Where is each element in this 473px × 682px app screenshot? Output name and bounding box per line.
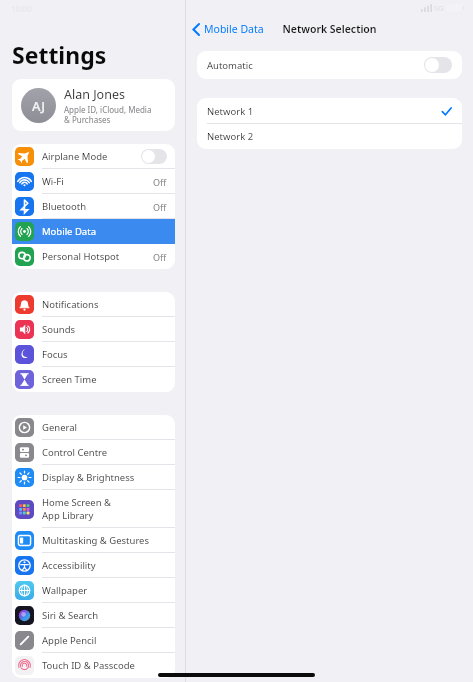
- staticText: Display & Brightness: [42, 471, 167, 484]
- button[interactable]: Touch ID & Passcode: [12, 653, 175, 678]
- staticText: Bluetooth: [42, 200, 153, 213]
- button[interactable]: Bluetooth: [12, 194, 175, 219]
- button[interactable]: Wi-Fi: [12, 169, 175, 194]
- staticText: Off: [153, 176, 167, 188]
- staticText: Sounds: [42, 323, 167, 336]
- button[interactable]: Focus: [12, 342, 175, 367]
- staticText: Network Selection: [186, 22, 473, 36]
- button[interactable]: Wallpaper: [12, 578, 175, 603]
- staticText: Apple Pencil: [42, 634, 167, 647]
- staticText: AJ: [32, 97, 45, 115]
- staticText: General: [42, 421, 167, 434]
- button[interactable]: Toggle: [424, 57, 452, 73]
- staticText: Apple ID, iCloud, Media & Purchases: [64, 104, 152, 125]
- staticText: App Library: [42, 509, 94, 522]
- button[interactable]: Sounds: [12, 317, 175, 342]
- staticText: Alan Jones: [64, 86, 125, 103]
- staticText: Mobile Data: [42, 225, 167, 238]
- button[interactable]: Notifications: [12, 292, 175, 317]
- button[interactable]: Home Screen &: [12, 490, 175, 528]
- staticText: Settings: [12, 39, 107, 70]
- staticText: Control Centre: [42, 446, 167, 459]
- staticText: Off: [153, 251, 167, 263]
- staticText: Off: [153, 201, 167, 213]
- staticText: Accessibility: [42, 559, 167, 572]
- staticText: Network 1: [207, 105, 254, 118]
- staticText: Screen Time: [42, 373, 167, 386]
- staticText: Multitasking & Gestures: [42, 534, 167, 547]
- button[interactable]: General: [12, 415, 175, 440]
- staticText: Home Screen &: [42, 496, 112, 509]
- button[interactable]: Network 1: [197, 98, 462, 124]
- button[interactable]: Airplane Mode: [12, 144, 175, 169]
- button[interactable]: Control Centre: [12, 440, 175, 465]
- button[interactable]: Multitasking & Gestures: [12, 528, 175, 553]
- staticText: Focus: [42, 348, 167, 361]
- staticText: Touch ID & Passcode: [42, 659, 167, 672]
- button[interactable]: Screen Time: [12, 367, 175, 392]
- button[interactable]: Automatic: [197, 51, 462, 79]
- staticText: Airplane Mode: [42, 150, 141, 163]
- staticText: Mobile Data: [204, 22, 264, 36]
- button[interactable]: Mobile Data: [192, 21, 264, 37]
- button[interactable]: Display & Brightness: [12, 465, 175, 490]
- button[interactable]: Siri & Search: [12, 603, 175, 628]
- staticText: Wi-Fi: [42, 175, 153, 188]
- button[interactable]: Accessibility: [12, 553, 175, 578]
- button[interactable]: Toggle: [141, 149, 167, 164]
- staticText: Network 2: [207, 130, 254, 143]
- staticText: Wallpaper: [42, 584, 167, 597]
- button[interactable]: Personal Hotspot: [12, 244, 175, 269]
- button[interactable]: Network 2: [197, 124, 462, 149]
- staticText: Siri & Search: [42, 609, 167, 622]
- button[interactable]: AJ: [12, 79, 175, 131]
- button[interactable]: Apple Pencil: [12, 628, 175, 653]
- staticText: Notifications: [42, 298, 167, 311]
- staticText: Automatic: [207, 59, 253, 72]
- staticText: 5G: [434, 3, 444, 13]
- staticText: Personal Hotspot: [42, 250, 153, 263]
- button[interactable]: Mobile Data: [12, 219, 175, 244]
